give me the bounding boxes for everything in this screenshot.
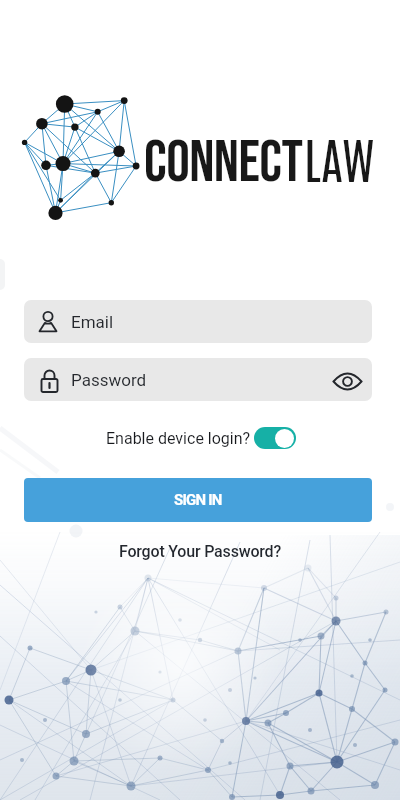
staticText: LAW (304, 125, 375, 188)
staticText: CONNECT (144, 128, 303, 199)
staticText: Forgot Your Password? (119, 542, 282, 561)
staticText: Password (71, 370, 147, 390)
staticText: Enable device login? (106, 429, 251, 448)
button[interactable]: Forgot Your Password? (0, 542, 400, 561)
button[interactable]: Password (24, 358, 372, 401)
staticText: Email (71, 312, 114, 332)
button[interactable]: Email (24, 300, 372, 343)
button[interactable] (254, 427, 296, 449)
staticText: SIGN IN (174, 491, 222, 509)
button[interactable]: SIGN IN (24, 478, 372, 522)
